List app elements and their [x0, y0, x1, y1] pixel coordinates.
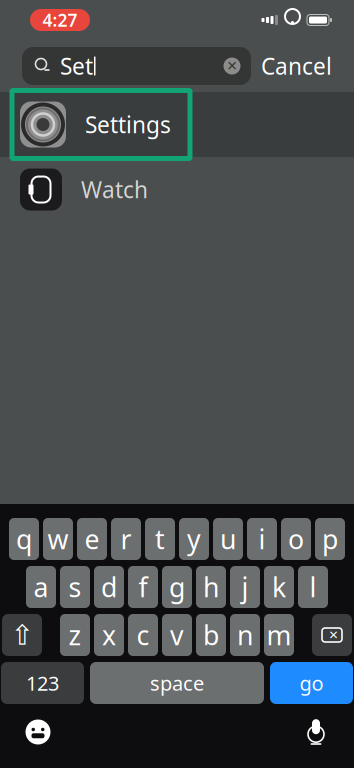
button[interactable]: h — [196, 566, 226, 608]
staticText: m — [266, 617, 291, 653]
button[interactable]: Emoji keyboard — [14, 708, 62, 756]
button[interactable]: a — [26, 566, 56, 608]
staticText: 123 — [26, 670, 59, 696]
button[interactable]: f — [128, 566, 158, 608]
staticText: r — [120, 521, 131, 557]
button[interactable]: Shift — [2, 614, 42, 656]
button[interactable]: o — [281, 518, 311, 560]
button[interactable]: 123 — [1, 662, 84, 704]
button[interactable]: t — [145, 518, 175, 560]
staticText: i — [258, 521, 265, 557]
staticText: 4:27 — [42, 8, 77, 31]
staticText: c — [136, 617, 149, 653]
staticText: Watch — [81, 174, 148, 204]
staticText: space — [150, 670, 204, 696]
button[interactable]: i — [247, 518, 277, 560]
button[interactable]: Delete — [312, 614, 352, 656]
staticText: s — [68, 569, 81, 605]
staticText: l — [309, 569, 316, 605]
button[interactable]: go — [270, 662, 353, 704]
staticText: ✕ — [226, 58, 237, 73]
staticText: e — [84, 521, 99, 557]
button[interactable]: p — [315, 518, 345, 560]
staticText: Set — [60, 51, 93, 81]
button[interactable]: l — [298, 566, 328, 608]
staticText: y — [187, 521, 201, 557]
staticText: o — [288, 521, 304, 557]
button[interactable]: b — [196, 614, 226, 656]
button[interactable]: Cancel — [251, 47, 342, 85]
button[interactable]: d — [94, 566, 124, 608]
staticText: u — [220, 521, 236, 557]
button[interactable]: y — [179, 518, 209, 560]
staticText: t — [155, 521, 165, 557]
button[interactable]: x — [94, 614, 124, 656]
button[interactable]: m — [264, 614, 294, 656]
button[interactable]: c — [128, 614, 158, 656]
button[interactable]: Clear text — [217, 51, 247, 81]
button[interactable]: q — [9, 518, 39, 560]
button[interactable]: Dictation — [292, 708, 340, 756]
staticText: d — [101, 569, 117, 605]
staticText: Settings — [85, 109, 171, 139]
staticText: f — [138, 569, 147, 605]
staticText: x — [102, 617, 116, 653]
staticText: ✕ — [328, 628, 338, 642]
staticText: Cancel — [261, 51, 332, 81]
staticText: q — [16, 521, 32, 557]
button[interactable]: s — [60, 566, 90, 608]
button[interactable]: g — [162, 566, 192, 608]
button[interactable]: w — [43, 518, 73, 560]
button[interactable]: n — [230, 614, 260, 656]
staticText: z — [68, 617, 81, 653]
staticText: k — [272, 569, 286, 605]
staticText: n — [237, 617, 253, 653]
staticText: j — [241, 569, 248, 605]
button[interactable]: r — [111, 518, 141, 560]
staticText: b — [203, 617, 219, 653]
button[interactable]: Watch — [0, 157, 354, 222]
staticText: g — [169, 569, 185, 605]
button[interactable]: space — [90, 662, 264, 704]
staticText: go — [299, 670, 323, 696]
staticText: v — [170, 617, 184, 653]
button[interactable]: z — [60, 614, 90, 656]
staticText: p — [322, 521, 338, 557]
staticText: w — [47, 521, 68, 557]
button[interactable]: Settings — [0, 92, 354, 157]
button[interactable]: j — [230, 566, 260, 608]
button[interactable]: e — [77, 518, 107, 560]
button[interactable]: k — [264, 566, 294, 608]
staticText: ⇧ — [10, 619, 33, 651]
staticText: h — [203, 569, 219, 605]
button[interactable]: u — [213, 518, 243, 560]
button[interactable]: v — [162, 614, 192, 656]
staticText: a — [33, 569, 48, 605]
